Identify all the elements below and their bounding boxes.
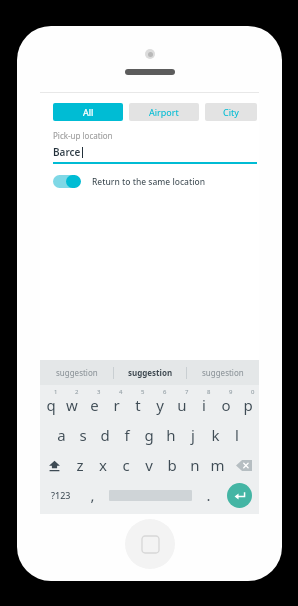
staticText: .	[206, 485, 211, 505]
staticText: Return to the same location	[92, 176, 206, 188]
button[interactable]: g	[138, 420, 160, 450]
staticText: r	[113, 395, 120, 415]
staticText: s	[79, 425, 87, 445]
staticText: v	[145, 455, 153, 475]
staticText: y	[156, 395, 164, 415]
button[interactable]: r	[105, 390, 127, 420]
button[interactable]: k	[204, 420, 226, 450]
staticText: 9	[229, 388, 233, 396]
staticText: t	[135, 395, 141, 415]
staticText: suggestion	[202, 367, 244, 378]
staticText: f	[124, 425, 130, 445]
button[interactable]: Home	[125, 519, 175, 569]
button[interactable]: Backspace	[229, 450, 259, 480]
staticText: suggestion	[56, 367, 98, 378]
staticText: j	[191, 425, 195, 445]
staticText: e	[90, 395, 99, 415]
staticText: n	[190, 455, 200, 475]
button[interactable]: suggestion	[40, 360, 113, 385]
button[interactable]: m	[206, 450, 229, 480]
staticText: i	[202, 395, 206, 415]
button[interactable]: s	[72, 420, 94, 450]
button[interactable]: q	[40, 390, 61, 420]
button[interactable]: o	[215, 390, 237, 420]
button[interactable]: t	[127, 390, 149, 420]
button[interactable]: v	[137, 450, 160, 480]
staticText: All	[83, 106, 94, 118]
staticText: w	[66, 395, 78, 415]
staticText: u	[177, 395, 187, 415]
button[interactable]: c	[114, 450, 137, 480]
button[interactable]: b	[160, 450, 183, 480]
button[interactable]: y	[149, 390, 171, 420]
button[interactable]: x	[91, 450, 114, 480]
staticText: City	[223, 106, 239, 118]
button[interactable]: z	[69, 450, 91, 480]
button[interactable]: l	[226, 420, 248, 450]
staticText: 7	[185, 388, 189, 396]
staticText: ?123	[51, 489, 71, 501]
button[interactable]: suggestion	[187, 360, 259, 385]
button[interactable]: suggestion	[114, 360, 186, 385]
staticText: 8	[207, 388, 211, 396]
staticText: q	[46, 395, 56, 415]
staticText: p	[243, 395, 253, 415]
staticText: d	[100, 425, 110, 445]
button[interactable]: Airport	[129, 103, 199, 121]
staticText: h	[166, 425, 176, 445]
staticText: 6	[163, 388, 167, 396]
staticText: k	[211, 425, 220, 445]
button[interactable]: e	[83, 390, 105, 420]
staticText: a	[57, 425, 66, 445]
button[interactable]: Pick-up location	[53, 130, 257, 164]
staticText: 4	[119, 388, 123, 396]
staticText: 2	[75, 388, 79, 396]
staticText: o	[221, 395, 231, 415]
button[interactable]: .	[197, 480, 219, 510]
staticText: Airport	[149, 106, 179, 118]
staticText: suggestion	[128, 367, 173, 378]
button[interactable]: d	[94, 420, 116, 450]
button[interactable]: Space	[103, 480, 197, 510]
button[interactable]: w	[61, 390, 83, 420]
button[interactable]: h	[160, 420, 182, 450]
button[interactable]: f	[116, 420, 138, 450]
staticText: Pick-up location	[53, 130, 113, 141]
button[interactable]: a	[50, 420, 72, 450]
staticText: m	[210, 455, 225, 475]
staticText: c	[122, 455, 130, 475]
button[interactable]: j	[182, 420, 204, 450]
button[interactable]: All	[53, 103, 123, 121]
staticText: ,	[90, 485, 95, 505]
button[interactable]: p	[237, 390, 259, 420]
button[interactable]: Enter	[219, 480, 259, 510]
button[interactable]: City	[205, 103, 257, 121]
button[interactable]: i	[193, 390, 215, 420]
staticText: g	[144, 425, 154, 445]
button[interactable]: Shift	[40, 450, 69, 480]
staticText: b	[167, 455, 177, 475]
button[interactable]: u	[171, 390, 193, 420]
staticText: 5	[141, 388, 145, 396]
staticText: Barce	[53, 145, 81, 159]
staticText: 1	[54, 388, 58, 396]
button[interactable]: ?123	[40, 480, 81, 510]
staticText: l	[235, 425, 239, 445]
staticText: z	[76, 455, 84, 475]
button[interactable]: n	[183, 450, 206, 480]
staticText: 3	[97, 388, 101, 396]
button[interactable]: Return to the same location	[53, 175, 259, 188]
staticText: 0	[251, 388, 255, 396]
staticText: x	[99, 455, 107, 475]
button[interactable]: ,	[81, 480, 103, 510]
